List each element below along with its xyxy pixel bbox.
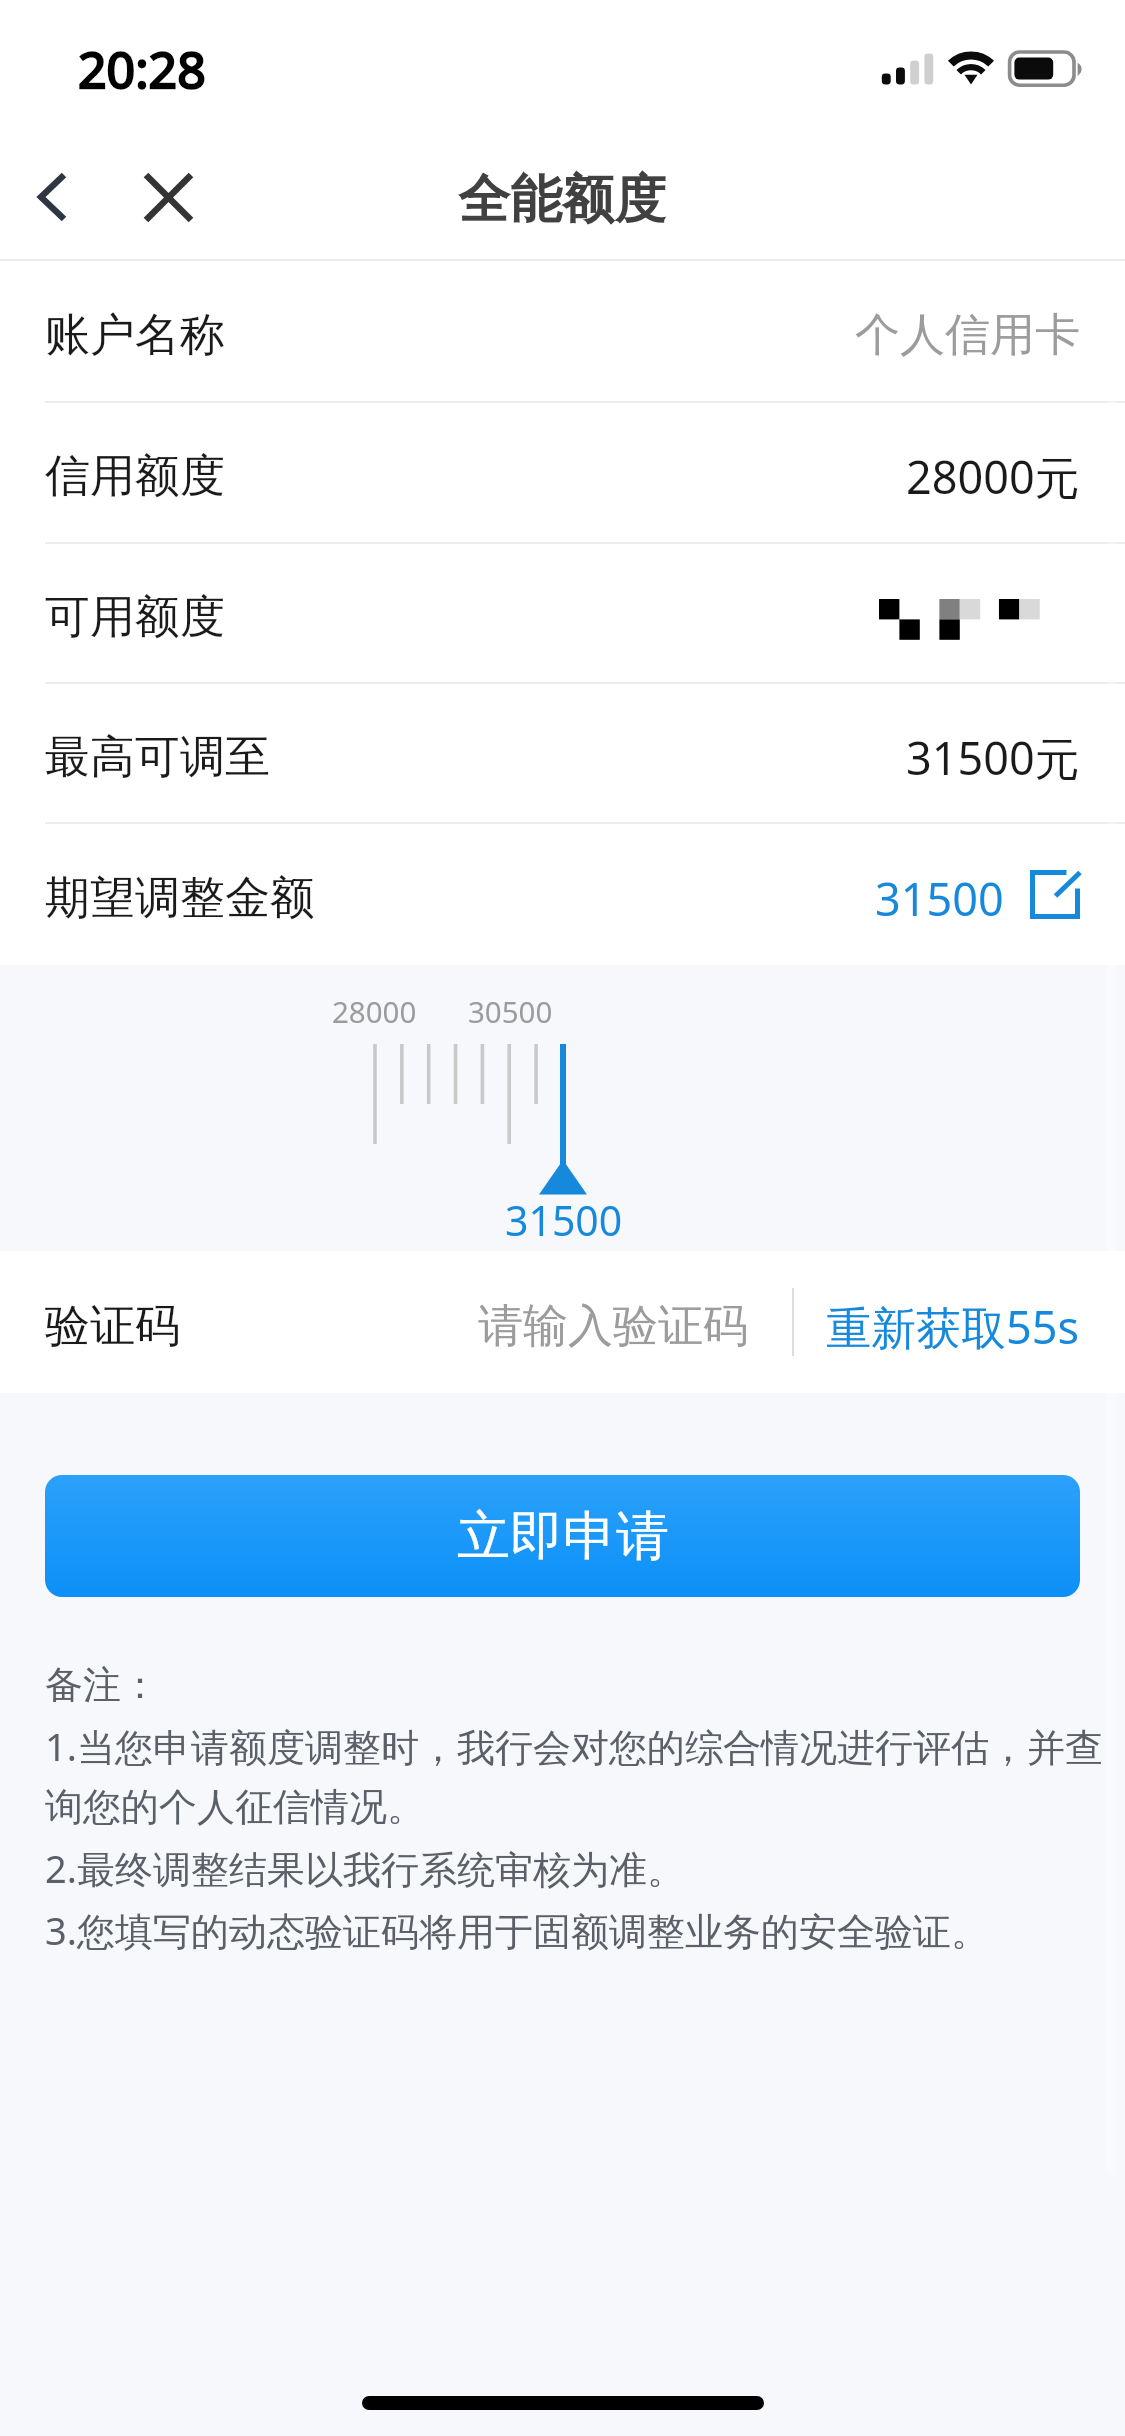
staticText: 28000 <box>332 991 417 1031</box>
staticText: 可用额度 <box>45 589 225 646</box>
staticText: 全能额度 <box>459 166 667 232</box>
button[interactable]: 立即申请 <box>45 1475 1080 1597</box>
staticText: 期望调整金额 <box>45 870 315 927</box>
staticText: 个人信用卡 <box>855 307 1080 364</box>
staticText: 立即申请 <box>457 1503 669 1570</box>
staticText: 31500 <box>505 1192 623 1248</box>
staticText: 31500 <box>875 868 1004 929</box>
staticText: 信用额度 <box>45 448 225 505</box>
button[interactable]: 期望调整金额 <box>0 824 1125 965</box>
staticText: 最高可调至 <box>45 729 270 786</box>
button[interactable]: 账户名称 <box>0 261 1125 401</box>
staticText: 重新获取55s <box>826 1296 1080 1357</box>
staticText: 31500元 <box>906 727 1080 788</box>
staticText: 账户名称 <box>45 307 225 364</box>
button[interactable]: 可用额度 <box>0 544 1125 682</box>
button[interactable]: 最高可调至 <box>0 684 1125 822</box>
button[interactable]: 重新获取55s <box>826 1292 1080 1353</box>
staticText: 20:28 <box>78 35 206 103</box>
staticText: 20:28 <box>78 35 206 103</box>
staticText: 28000元 <box>906 446 1080 507</box>
button[interactable]: Close <box>121 150 215 244</box>
button[interactable]: 信用额度 <box>0 403 1125 542</box>
staticText: 备注： 1.当您申请额度调整时，我行会对您的综合情况进行评估，并查询您的个人征信… <box>45 1654 1117 1960</box>
staticText: 验证码 <box>45 1298 180 1355</box>
staticText: 请输入验证码 <box>478 1298 748 1355</box>
staticText: 30500 <box>468 991 553 1031</box>
staticText: 全能额度 <box>459 166 667 232</box>
button[interactable]: Back <box>5 150 99 244</box>
